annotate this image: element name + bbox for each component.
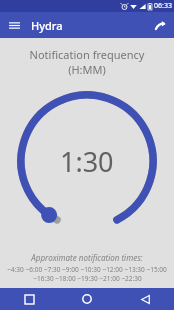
button[interactable]: Open navigation drawer [5,16,23,34]
staticText: Approximate notification times: [31,252,143,263]
button[interactable]: Share [151,16,169,34]
staticText: 06:33 [154,1,172,11]
staticText: ~4:30 ~6:00 ~7:30 ~9:00 ~10:30 ~12:00 ~1… [7,265,167,274]
button[interactable]: Recent apps [0,288,58,310]
button[interactable]: Notification frequency dial, 1 hour 30 m… [12,86,162,236]
staticText: ~16:30 ~18:00 ~19:30 ~21:00 ~22:30 [33,274,142,283]
button[interactable]: Home [58,288,116,310]
staticText: Notification frequency (H:MM) [0,47,174,77]
staticText: 1:30 [60,143,114,180]
button[interactable]: Back [116,288,174,310]
staticText: Hydra [31,18,63,33]
